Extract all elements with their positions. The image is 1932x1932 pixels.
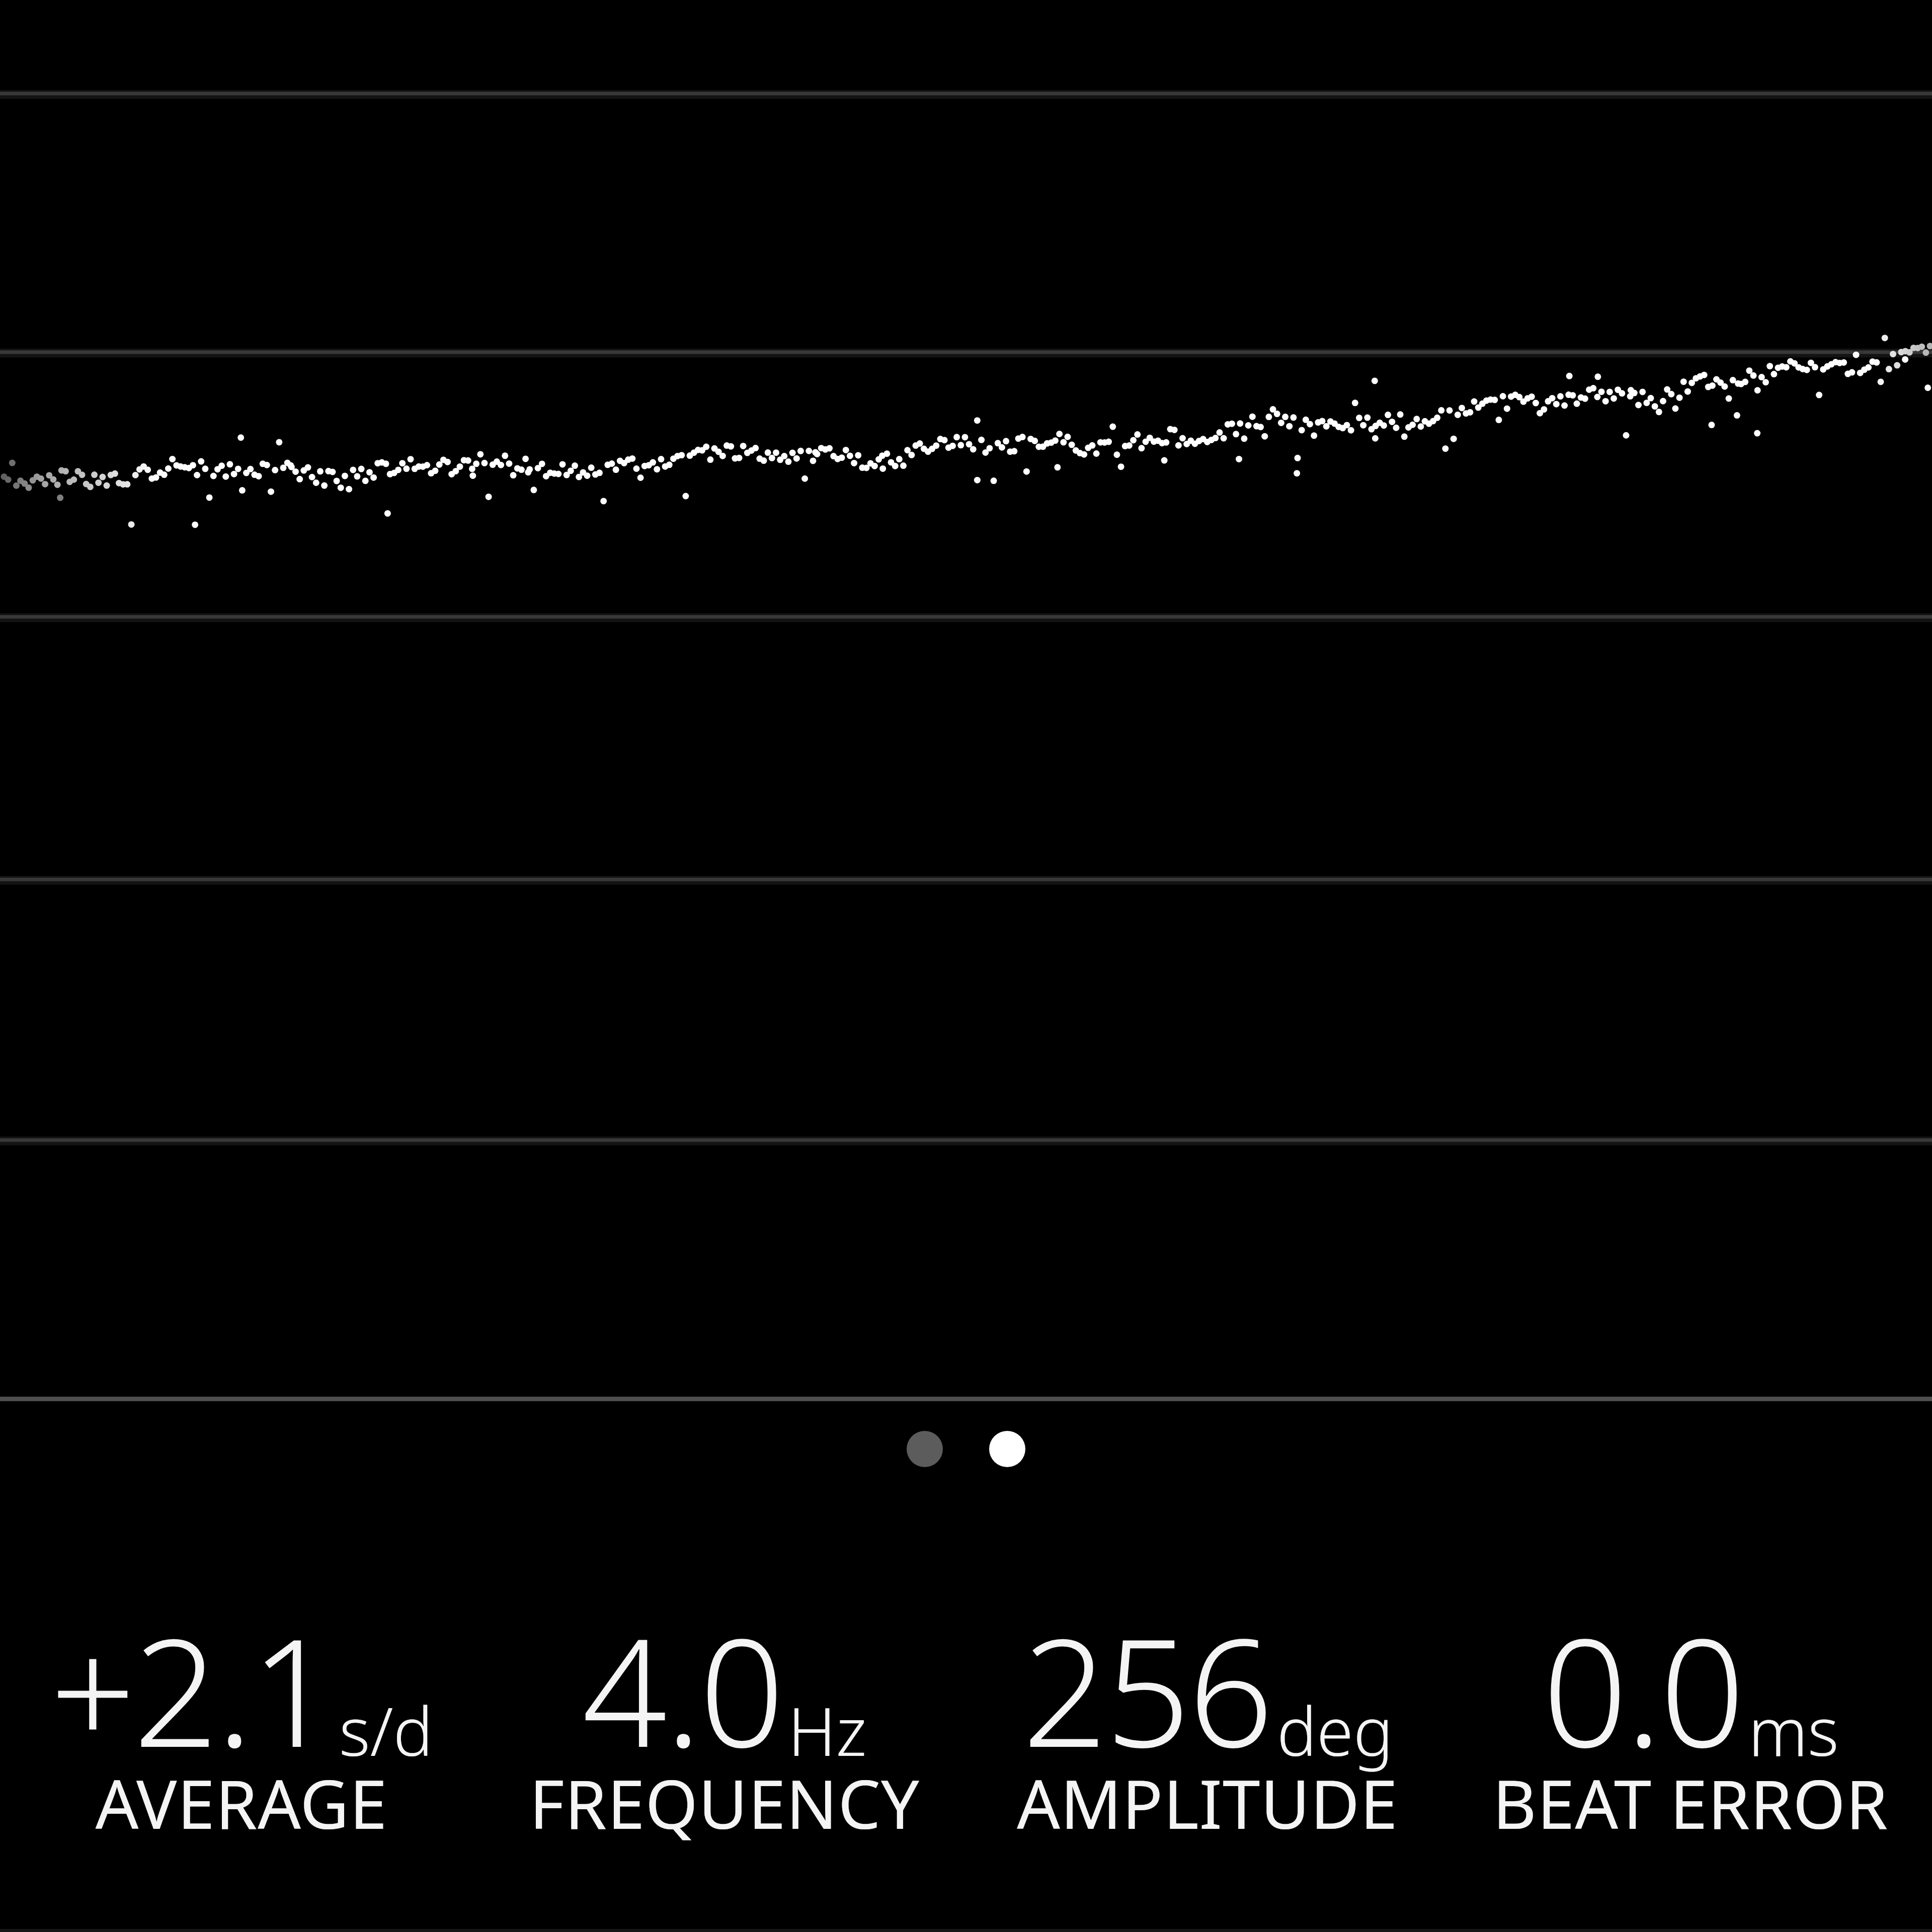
staticText: 4.0 [582, 1588, 783, 1791]
button[interactable]: Page 1 [907, 1431, 943, 1467]
staticText: FREQUENCY [483, 1757, 966, 1849]
staticText: AMPLITUDE [966, 1757, 1449, 1849]
staticText: ms [1748, 1685, 1839, 1776]
staticText: s/d [339, 1685, 433, 1776]
button[interactable]: 256 [966, 1565, 1449, 1846]
button[interactable]: 0.0 [1449, 1565, 1932, 1846]
staticText: BEAT ERROR [1449, 1757, 1932, 1849]
staticText: +2.1 [50, 1588, 334, 1791]
staticText: 0.0 [1543, 1588, 1743, 1791]
button[interactable]: Page 2, current page [989, 1431, 1025, 1467]
button[interactable]: 4.0 [483, 1565, 966, 1846]
staticText: deg [1277, 1685, 1393, 1776]
button[interactable]: +2.1 [0, 1565, 483, 1846]
staticText: 256 [1022, 1588, 1272, 1791]
staticText: Hz [788, 1685, 867, 1776]
staticText: AVERAGE [0, 1757, 483, 1849]
